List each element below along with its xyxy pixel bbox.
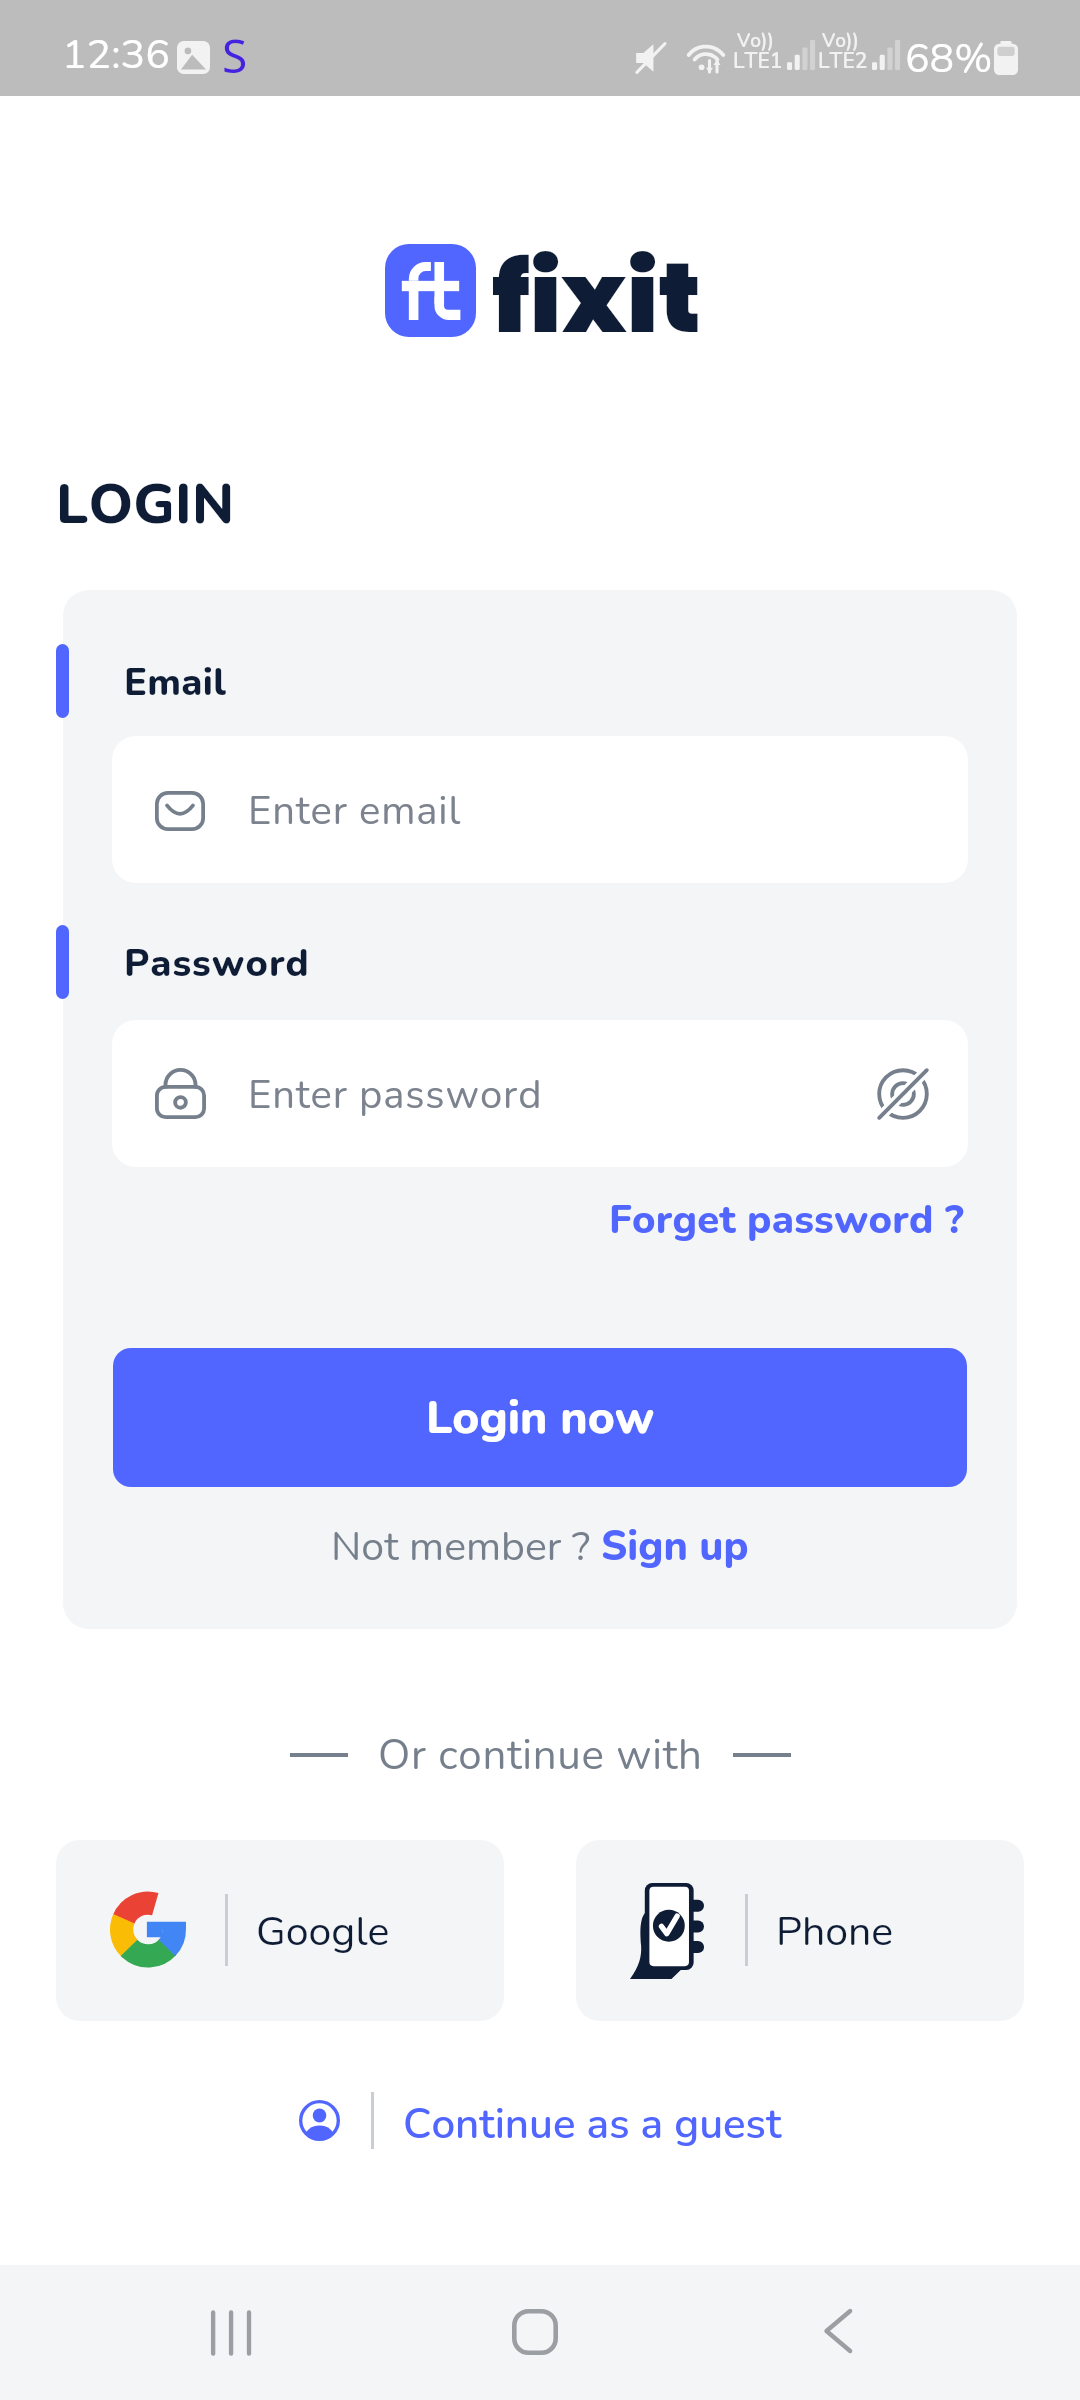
button[interactable]: Forget password ? <box>600 1192 964 1248</box>
button[interactable]: Recent apps <box>206 2310 252 2356</box>
staticText: Enter password <box>248 1068 543 1123</box>
staticText: LOGIN <box>56 466 235 542</box>
staticText: LTE2 <box>818 47 868 76</box>
staticText: LTE1 <box>733 47 783 76</box>
button[interactable]: Google <box>56 1840 504 2021</box>
button[interactable]: Continue as a guest <box>296 2092 788 2152</box>
staticText: Enter email <box>248 784 462 839</box>
staticText: Sign up <box>601 1519 749 1575</box>
button[interactable]: Phone <box>576 1840 1024 2021</box>
staticText: Vo)) <box>822 28 859 54</box>
button[interactable]: Back <box>822 2306 854 2356</box>
button[interactable]: Login now <box>113 1348 967 1487</box>
staticText: Or continue with <box>378 1727 703 1784</box>
staticText: Password <box>124 938 310 990</box>
staticText: fixit <box>492 229 702 366</box>
staticText: 12:36 <box>62 27 170 83</box>
staticText: 68% <box>905 31 993 87</box>
staticText: Continue as a guest <box>403 2096 782 2153</box>
staticText: Vo)) <box>737 28 774 54</box>
staticText: Not member ? <box>331 1519 601 1575</box>
button[interactable]: Home <box>512 2309 558 2355</box>
staticText: Forget password ? <box>609 1193 964 1248</box>
staticText: Email <box>124 657 227 709</box>
button[interactable]: Sign up <box>601 1519 749 1575</box>
button[interactable]: Show password <box>868 1059 938 1129</box>
button[interactable]: Enter password <box>112 1020 968 1167</box>
button[interactable]: Enter email <box>112 736 968 883</box>
staticText: S <box>222 24 248 87</box>
staticText: Phone <box>776 1904 894 1960</box>
staticText: Login now <box>426 1386 655 1449</box>
staticText: Google <box>256 1904 390 1960</box>
